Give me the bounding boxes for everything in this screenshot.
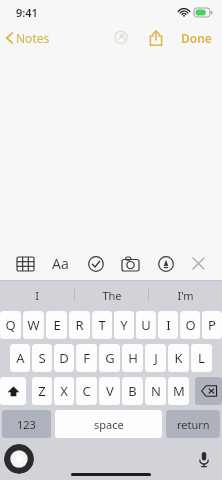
button[interactable]: J — [145, 344, 166, 372]
button[interactable]: Camera — [119, 254, 142, 274]
button[interactable]: R — [69, 311, 90, 339]
staticText: U — [141, 316, 151, 334]
button[interactable]: H — [122, 344, 143, 372]
button[interactable]: A — [10, 344, 30, 372]
staticText: D — [59, 349, 69, 367]
staticText: E — [53, 316, 61, 334]
staticText: F — [83, 349, 90, 367]
staticText: R — [75, 316, 84, 334]
staticText: G — [105, 349, 115, 367]
staticText: O — [185, 316, 196, 334]
button[interactable]: U — [136, 311, 156, 339]
staticText: C — [82, 382, 91, 400]
button[interactable]: I — [158, 311, 178, 339]
button[interactable]: I'm — [149, 281, 222, 309]
staticText: V — [106, 382, 114, 400]
staticText: J — [154, 349, 158, 367]
button[interactable]: Q — [0, 311, 21, 339]
button[interactable]: The — [75, 281, 148, 309]
button[interactable]: Backspace — [195, 377, 222, 405]
button[interactable]: L — [191, 344, 212, 372]
button[interactable]: I — [0, 281, 74, 309]
button[interactable]: W — [23, 311, 44, 339]
staticText: Notes — [16, 30, 50, 46]
staticText: L — [198, 349, 205, 367]
staticText: N — [151, 382, 161, 400]
button[interactable]: C — [76, 377, 97, 405]
button[interactable]: Z — [32, 377, 52, 405]
staticText: I — [166, 316, 171, 334]
button[interactable]: Share — [143, 24, 169, 52]
button[interactable]: F — [76, 344, 97, 372]
staticText: Q — [5, 316, 16, 334]
staticText: Aa — [52, 254, 69, 273]
staticText: I'm — [177, 288, 194, 303]
button[interactable]: O — [180, 311, 200, 339]
button[interactable]: return — [166, 410, 220, 438]
button[interactable]: G — [99, 344, 120, 372]
staticText: W — [27, 316, 40, 334]
button[interactable]: Aa — [49, 251, 72, 276]
staticText: Z — [38, 382, 46, 400]
button[interactable]: Table — [14, 254, 37, 274]
button[interactable]: D — [54, 344, 74, 372]
button[interactable]: space — [55, 410, 162, 438]
button[interactable]: Checklist — [85, 253, 107, 275]
staticText: Y — [120, 316, 128, 334]
button[interactable]: Done — [177, 26, 216, 50]
staticText: The — [102, 288, 122, 303]
button[interactable]: Dictation — [196, 449, 212, 470]
staticText: M — [173, 382, 185, 400]
button[interactable]: X — [54, 377, 74, 405]
staticText: K — [174, 349, 183, 367]
staticText: 9:41 — [16, 5, 38, 20]
button[interactable]: T — [92, 311, 112, 339]
staticText: H — [128, 349, 138, 367]
button[interactable]: K — [168, 344, 189, 372]
staticText: X — [60, 382, 68, 400]
button[interactable]: S — [32, 344, 52, 372]
staticText: B — [128, 382, 137, 400]
staticText: Done — [181, 30, 212, 46]
button[interactable]: 123 — [2, 410, 51, 438]
staticText: P — [208, 316, 216, 334]
button[interactable]: Markup — [155, 253, 177, 275]
staticText: space — [94, 417, 124, 432]
button[interactable]: Shift — [0, 377, 26, 405]
button[interactable]: N — [145, 377, 166, 405]
button[interactable]: M — [168, 377, 189, 405]
button[interactable]: V — [99, 377, 120, 405]
staticText: S — [38, 349, 46, 367]
staticText: return — [177, 417, 210, 432]
button[interactable]: Notes — [0, 26, 58, 50]
button[interactable]: Emoji — [4, 444, 34, 474]
staticText: 123 — [17, 417, 36, 432]
button[interactable]: P — [202, 311, 222, 339]
button[interactable]: E — [46, 311, 67, 339]
staticText: A — [16, 349, 25, 367]
staticText: I — [35, 288, 39, 303]
button[interactable]: B — [122, 377, 143, 405]
staticText: T — [98, 316, 106, 334]
button[interactable]: Y — [114, 311, 134, 339]
button[interactable]: Add People — [107, 24, 135, 52]
button[interactable]: Close — [189, 254, 208, 273]
